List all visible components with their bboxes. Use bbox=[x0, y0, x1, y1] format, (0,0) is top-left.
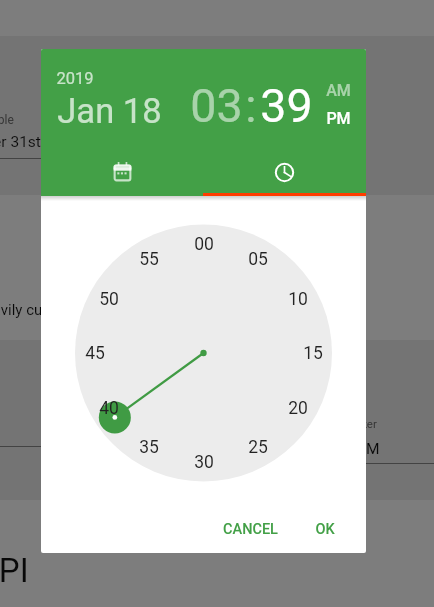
staticText: Date picker is not available bbox=[0, 113, 14, 127]
staticText: 39 bbox=[260, 79, 313, 133]
staticText: 55 bbox=[139, 249, 159, 270]
staticText: The date picker is heavily customizable bbox=[0, 301, 116, 319]
staticText: API bbox=[0, 551, 29, 590]
staticText: 2019 bbox=[56, 69, 94, 88]
staticText: 15 bbox=[303, 343, 323, 364]
staticText: 45 bbox=[85, 343, 105, 364]
staticText: 00 bbox=[194, 234, 214, 255]
staticText: 30 bbox=[194, 452, 214, 473]
button[interactable]: CANCEL bbox=[217, 511, 283, 547]
staticText: 35 bbox=[139, 437, 159, 458]
staticText: OK bbox=[315, 521, 335, 538]
staticText: CANCEL bbox=[223, 521, 278, 538]
button[interactable]: OK bbox=[305, 511, 345, 547]
staticText: 50 bbox=[99, 289, 119, 310]
staticText: Jan 18 bbox=[57, 91, 162, 132]
staticText: 10:30 AM bbox=[313, 440, 380, 458]
button[interactable]: Date tab bbox=[41, 149, 203, 196]
staticText: 03 bbox=[190, 79, 243, 133]
staticText: PM bbox=[326, 109, 351, 128]
staticText: 25 bbox=[248, 437, 268, 458]
staticText: 05 bbox=[248, 249, 268, 270]
staticText: December 31st bbox=[0, 133, 41, 151]
staticText: 40 bbox=[99, 398, 119, 419]
staticText: : bbox=[245, 79, 257, 133]
staticText: 20 bbox=[288, 398, 308, 419]
staticText: 10 bbox=[288, 289, 308, 310]
button[interactable]: Time tab bbox=[203, 149, 366, 196]
staticText: Time picker bbox=[317, 417, 377, 430]
staticText: AM bbox=[326, 81, 351, 100]
